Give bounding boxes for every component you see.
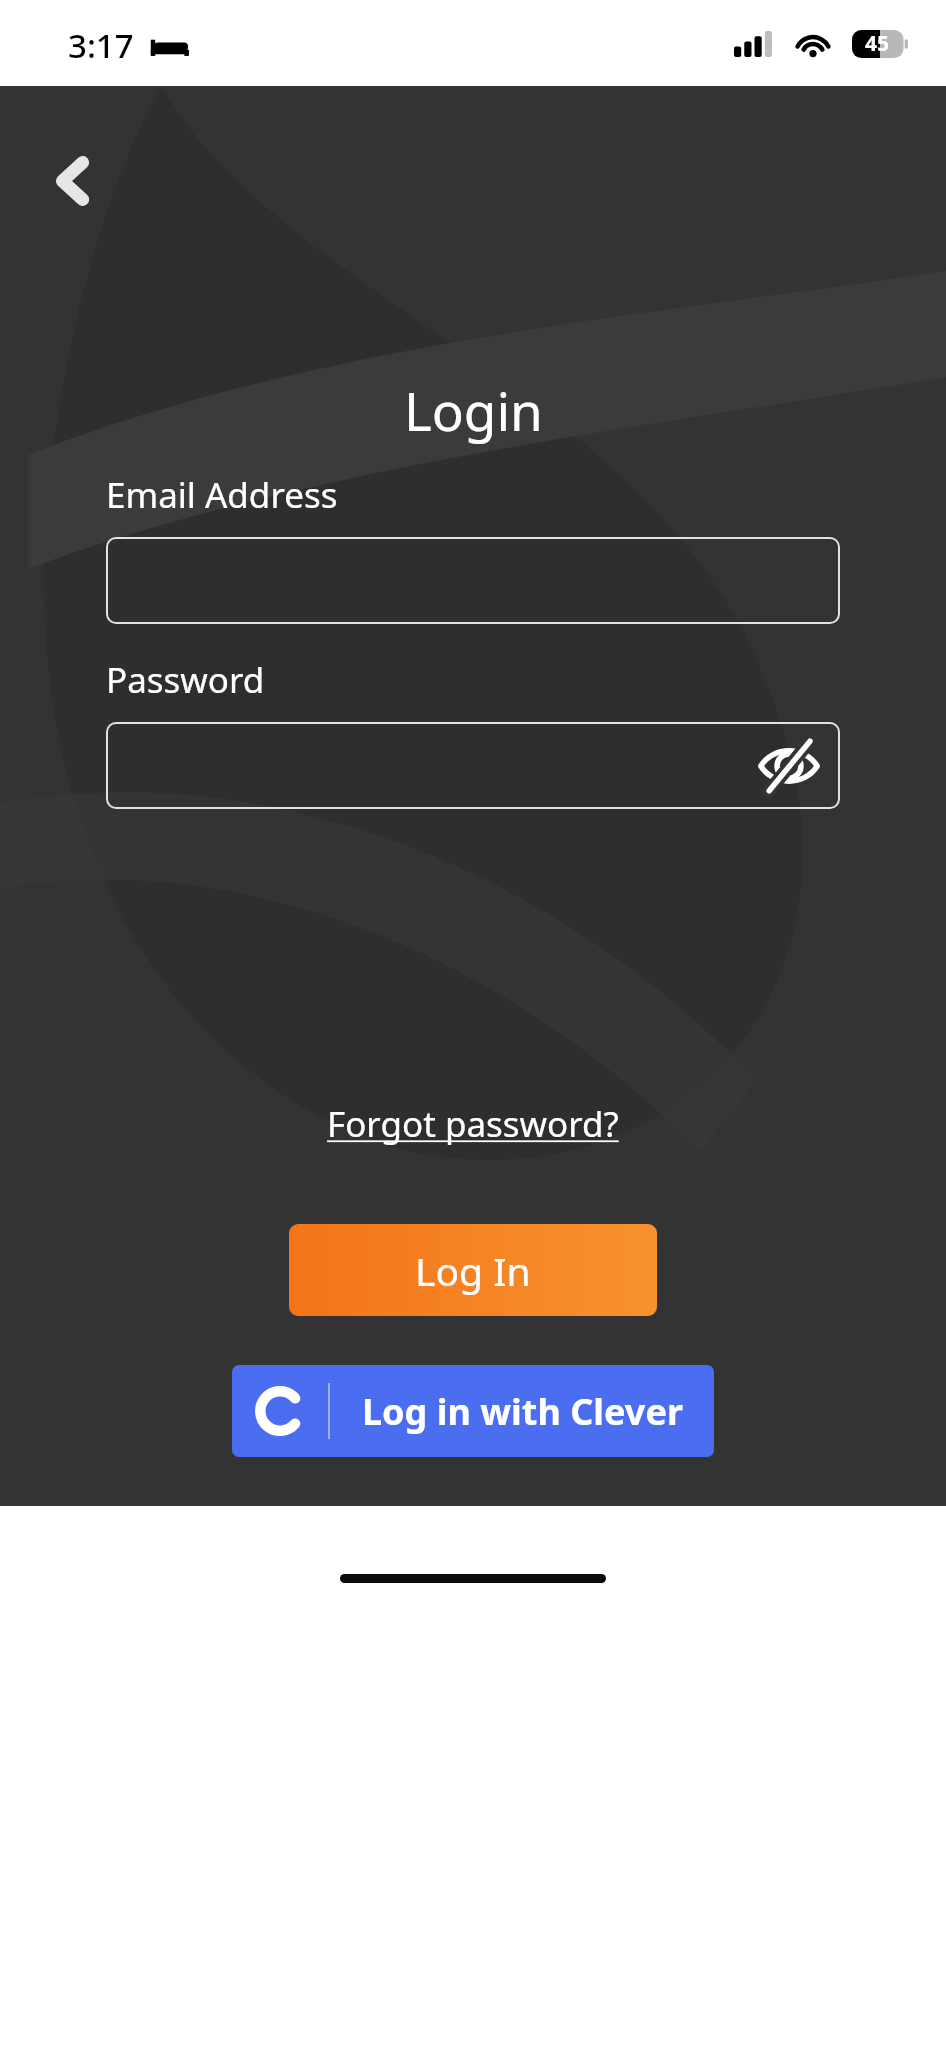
staticText: Forgot password? xyxy=(327,1100,619,1148)
staticText: Log in with Clever xyxy=(362,1387,683,1436)
button[interactable]: Log In xyxy=(289,1224,657,1316)
button[interactable]: Don't have an account? Sign up xyxy=(208,1504,739,1564)
button[interactable]: Email Address input xyxy=(106,537,840,624)
staticText: 45 xyxy=(865,29,890,58)
staticText: Email Address xyxy=(106,471,338,519)
staticText: Login xyxy=(404,374,543,446)
staticText: Log In xyxy=(415,1244,531,1297)
button[interactable]: Password input xyxy=(106,722,840,809)
button[interactable]: Forgot password? xyxy=(317,1094,629,1154)
staticText: Password xyxy=(106,656,265,704)
staticText: 3:17 xyxy=(68,23,134,68)
button[interactable]: Log in with Clever xyxy=(232,1365,714,1457)
button[interactable]: Back xyxy=(34,142,112,220)
button[interactable]: Show password xyxy=(752,729,826,803)
